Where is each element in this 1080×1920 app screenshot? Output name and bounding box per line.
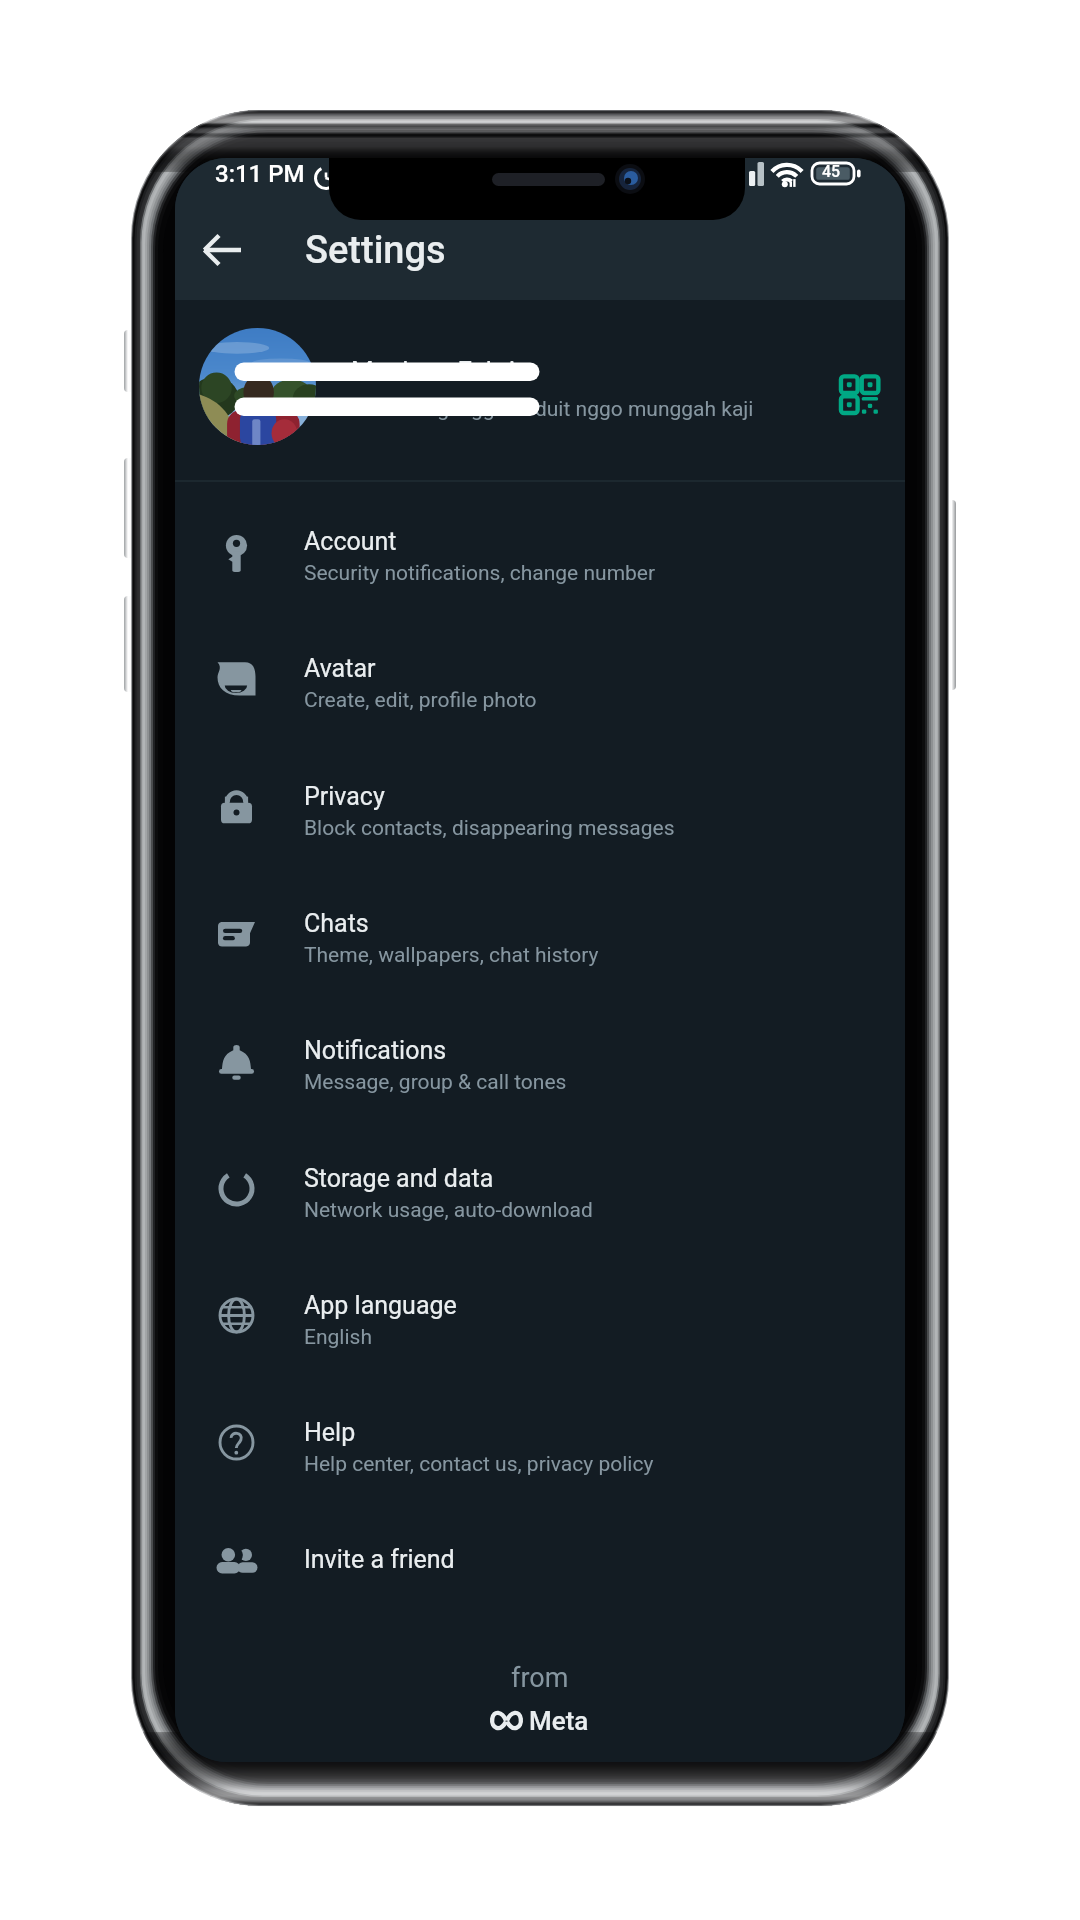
- staticText: Network usage, auto-download: [304, 1198, 593, 1223]
- staticText: Meta: [529, 1706, 589, 1736]
- button[interactable]: App language: [175, 1259, 905, 1386]
- button[interactable]: Back: [192, 220, 252, 280]
- button[interactable]: Chats: [175, 877, 905, 1004]
- staticText: Theme, wallpapers, chat history: [304, 943, 599, 968]
- button[interactable]: Invite a friend: [175, 1513, 905, 1640]
- button[interactable]: Maulana Fahri: [175, 300, 905, 480]
- staticText: Security notifications, change number: [304, 561, 656, 586]
- staticText: Account: [304, 527, 397, 556]
- staticText: Message, group & call tones: [304, 1070, 567, 1095]
- button[interactable]: Avatar: [175, 622, 905, 749]
- staticText: Chats: [304, 909, 369, 938]
- staticText: Maulana Fahri: [351, 356, 516, 386]
- staticText: Sibuk - lagi nggolet duit nggo munggah k…: [353, 397, 754, 422]
- staticText: Help: [304, 1418, 356, 1447]
- staticText: Privacy: [304, 782, 385, 811]
- staticText: Create, edit, profile photo: [304, 688, 537, 713]
- staticText: Notifications: [304, 1036, 447, 1065]
- button[interactable]: Notifications: [175, 1004, 905, 1131]
- button[interactable]: Help: [175, 1386, 905, 1513]
- button[interactable]: Account: [175, 495, 905, 622]
- button[interactable]: QR code: [826, 364, 886, 424]
- staticText: Avatar: [304, 654, 376, 683]
- button[interactable]: Storage and data: [175, 1132, 905, 1259]
- staticText: Storage and data: [304, 1164, 494, 1193]
- staticText: Block contacts, disappearing messages: [304, 816, 675, 841]
- staticText: from: [511, 1662, 569, 1694]
- staticText: English: [304, 1325, 372, 1350]
- staticText: Settings: [305, 228, 446, 273]
- staticText: 45: [822, 162, 841, 181]
- button[interactable]: Privacy: [175, 750, 905, 877]
- staticText: App language: [304, 1291, 457, 1320]
- staticText: Invite a friend: [304, 1545, 455, 1574]
- staticText: 3:11 PM: [215, 160, 305, 188]
- staticText: Help center, contact us, privacy policy: [304, 1452, 654, 1477]
